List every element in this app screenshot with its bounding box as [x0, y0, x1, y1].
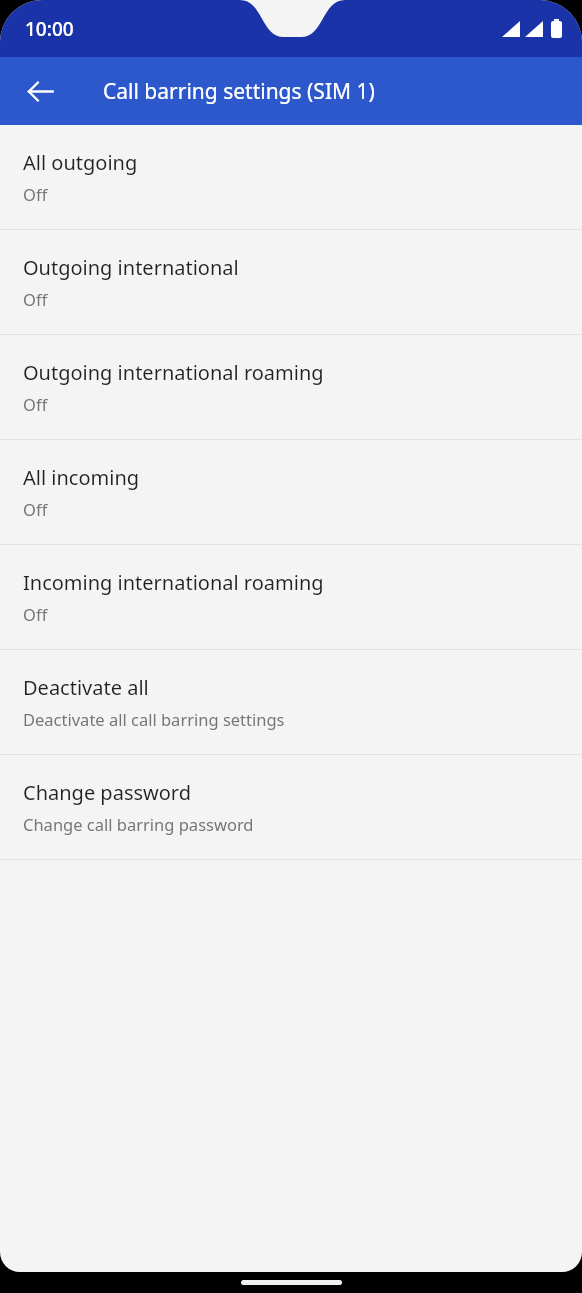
staticText: Outgoing international — [23, 254, 239, 281]
staticText: 10:00 — [25, 16, 74, 42]
button[interactable]: Outgoing international roaming — [0, 335, 582, 439]
staticText: Deactivate all — [23, 674, 149, 701]
staticText: Off — [23, 393, 48, 415]
button[interactable]: Back — [13, 64, 67, 118]
button[interactable]: Change password — [0, 755, 582, 859]
staticText: Off — [23, 288, 48, 310]
staticText: Off — [23, 183, 48, 205]
button[interactable]: Incoming international roaming — [0, 545, 582, 649]
staticText: Incoming international roaming — [23, 569, 324, 596]
staticText: Off — [23, 603, 48, 625]
staticText: Off — [23, 498, 48, 520]
button[interactable]: All incoming — [0, 440, 582, 544]
staticText: Deactivate all call barring settings — [23, 708, 285, 730]
staticText: All incoming — [23, 464, 140, 491]
button[interactable]: All outgoing — [0, 125, 582, 229]
staticText: Call barring settings (SIM 1) — [103, 77, 375, 106]
button[interactable]: Outgoing international — [0, 230, 582, 334]
staticText: All outgoing — [23, 149, 138, 176]
staticText: Outgoing international roaming — [23, 359, 324, 386]
staticText: Change call barring password — [23, 813, 254, 835]
button[interactable]: Deactivate all — [0, 650, 582, 754]
staticText: Change password — [23, 779, 192, 806]
